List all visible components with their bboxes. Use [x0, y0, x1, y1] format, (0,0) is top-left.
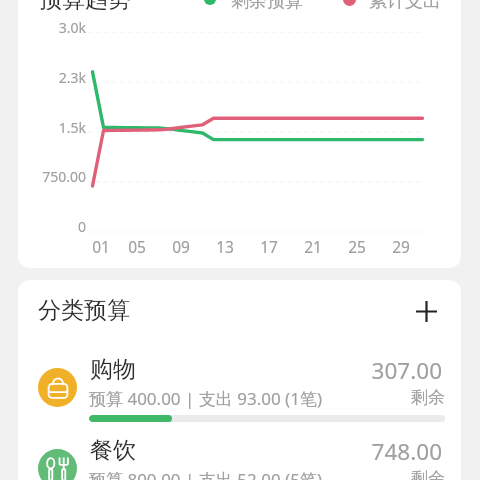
staticText: 预算 800.00 | 支出 52.00 (5笔) — [89, 468, 323, 480]
staticText: 剩余 — [318, 468, 445, 480]
button[interactable]: 购物 — [18, 341, 461, 422]
staticText: 09 — [161, 236, 201, 257]
staticText: 307.00 — [218, 355, 442, 386]
button[interactable]: Add category budget — [406, 291, 446, 331]
staticText: 13 — [205, 236, 245, 257]
staticText: 17 — [249, 236, 289, 257]
staticText: 剩余预算 — [231, 0, 303, 13]
staticText: 预算趋势 — [39, 0, 131, 14]
staticText: 1.5k — [0, 118, 86, 137]
staticText: 750.00 — [0, 167, 86, 186]
staticText: 2.3k — [0, 68, 86, 87]
staticText: 餐饮 — [90, 436, 136, 465]
staticText: 21 — [293, 236, 333, 257]
staticText: 预算 400.00 | 支出 93.00 (1笔) — [89, 387, 323, 410]
staticText: 0 — [0, 217, 86, 236]
staticText: 748.00 — [218, 436, 442, 467]
staticText: 25 — [337, 236, 377, 257]
staticText: 分类预算 — [38, 296, 130, 325]
staticText: 购物 — [90, 355, 136, 384]
button[interactable]: 餐饮 — [18, 422, 461, 480]
staticText: 29 — [381, 236, 421, 257]
staticText: 剩余 — [318, 387, 445, 408]
staticText: 05 — [117, 236, 157, 257]
staticText: 3.0k — [0, 18, 86, 37]
staticText: 累计支出 — [369, 0, 441, 13]
staticText: 01 — [81, 236, 121, 257]
